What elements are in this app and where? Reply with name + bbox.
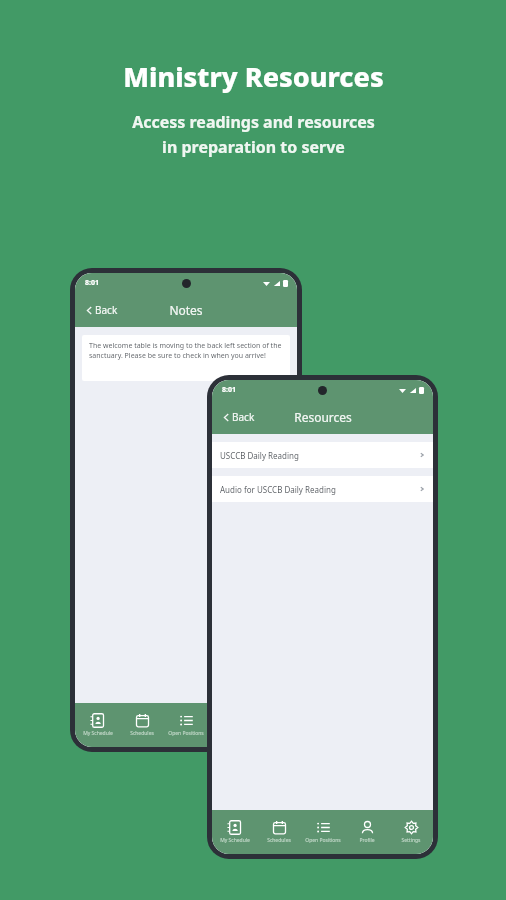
staticText: Audio for USCCB Daily Reading (220, 484, 336, 495)
staticText: Access readings and resources (132, 111, 375, 133)
staticText: Notes (169, 302, 203, 318)
button[interactable]: USCCB Daily Reading (212, 442, 433, 468)
staticText: Ministry Resources (123, 58, 384, 95)
button[interactable]: Back (83, 300, 121, 320)
button[interactable]: Settings (389, 810, 433, 854)
staticText: in preparation to serve (162, 136, 345, 158)
button[interactable]: Open Positions (164, 703, 208, 747)
button[interactable]: Profile (345, 810, 389, 854)
staticText: Open Positions (168, 730, 204, 737)
button[interactable]: Schedules (120, 703, 164, 747)
button[interactable]: My Schedule (212, 810, 257, 854)
staticText: 8:01 (222, 385, 236, 395)
staticText: My Schedule (220, 837, 250, 844)
staticText: Resources (294, 409, 352, 425)
button[interactable]: Back (220, 407, 258, 427)
staticText: 8:01 (85, 278, 99, 288)
staticText: Profile (359, 837, 375, 844)
staticText: USCCB Daily Reading (220, 450, 299, 461)
staticText: Back (232, 410, 255, 424)
button[interactable]: The welcome table is moving to the back … (82, 335, 290, 381)
staticText: Back (95, 303, 118, 317)
button[interactable]: Schedules (257, 810, 301, 854)
staticText: Schedules (267, 837, 291, 844)
staticText: Open Positions (305, 837, 341, 844)
staticText: Settings (401, 837, 421, 844)
button[interactable]: Open Positions (301, 810, 345, 854)
staticText: My Schedule (83, 730, 113, 737)
staticText: The welcome table is moving to the back … (89, 341, 283, 361)
button[interactable]: My Schedule (75, 703, 120, 747)
staticText: Schedules (130, 730, 154, 737)
button[interactable]: Audio for USCCB Daily Reading (212, 476, 433, 502)
